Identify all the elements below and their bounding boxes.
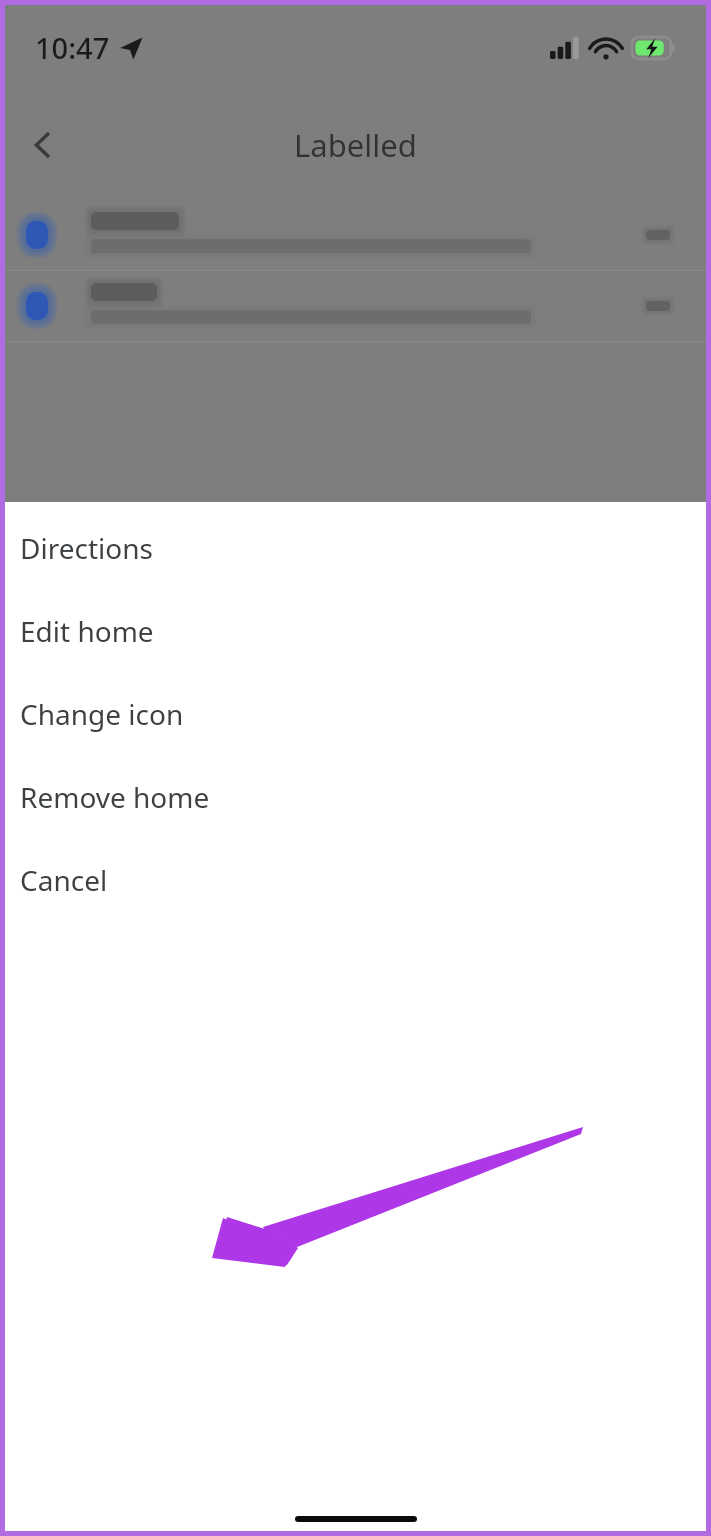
staticText: Change icon	[20, 695, 184, 733]
button[interactable]: Directions	[5, 502, 706, 567]
button[interactable]: Cancel	[5, 816, 706, 899]
button[interactable]: Change icon	[5, 650, 706, 733]
staticText: Directions	[20, 529, 153, 567]
staticText: Labelled	[294, 124, 417, 166]
staticText: Remove home	[20, 778, 210, 816]
staticText: Cancel	[20, 861, 108, 899]
button[interactable]: Back	[15, 117, 71, 173]
button[interactable]: Remove home	[5, 733, 706, 816]
button[interactable]: Edit home	[5, 567, 706, 650]
button[interactable]	[5, 200, 706, 270]
staticText: 10:47	[35, 28, 110, 67]
button[interactable]	[5, 271, 706, 341]
staticText: Edit home	[20, 612, 154, 650]
